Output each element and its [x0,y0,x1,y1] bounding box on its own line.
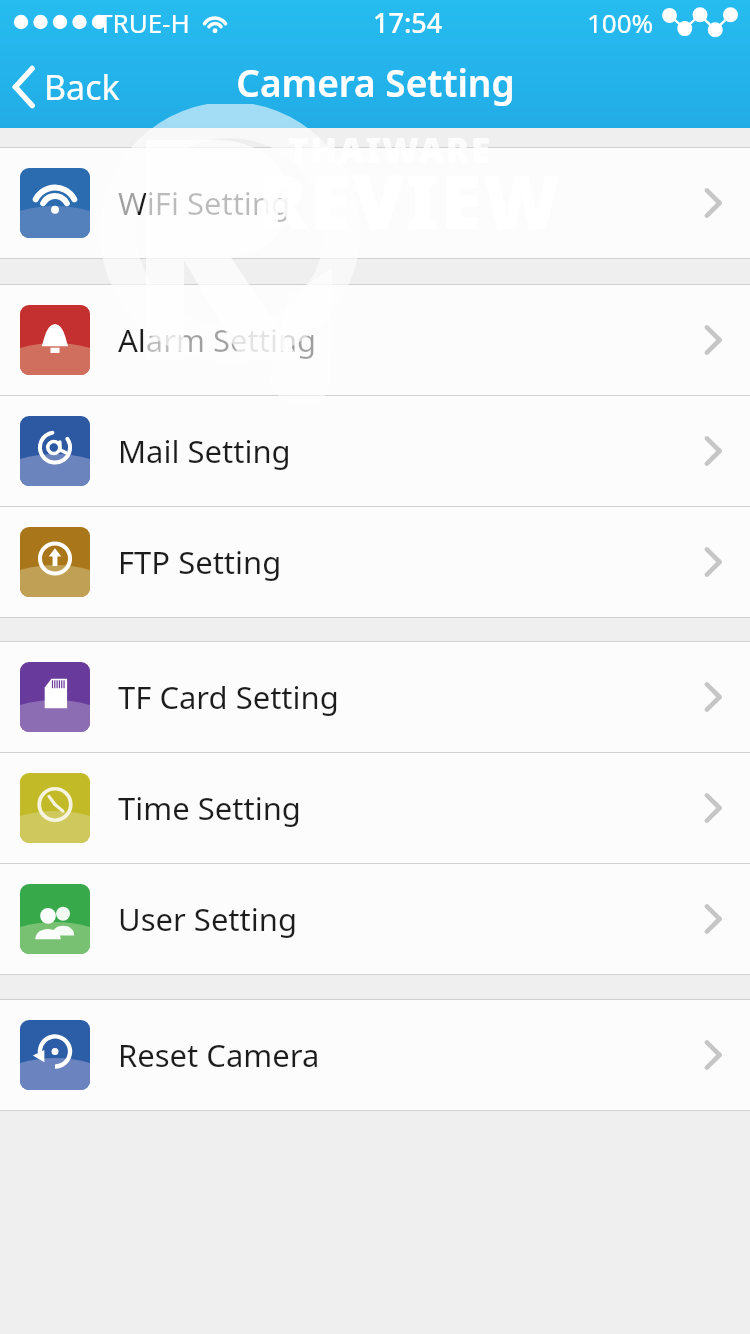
button[interactable]: Alarm Setting [0,285,750,395]
staticText: Mail Setting [118,430,702,472]
button[interactable]: Mail Setting [0,396,750,506]
staticText: 17:54 [373,4,443,41]
staticText: Reset Camera [118,1034,702,1076]
staticText: TRUE-H [98,5,190,40]
staticText: TF Card Setting [118,676,702,718]
staticText: WiFi Setting [118,182,702,224]
staticText: Time Setting [118,787,702,829]
staticText: FTP Setting [118,541,702,583]
button[interactable]: TF Card Setting [0,642,750,752]
button[interactable]: Reset Camera [0,1000,750,1110]
staticText: Camera Setting [236,57,515,107]
button[interactable]: User Setting [0,864,750,974]
staticText: 100% [587,5,654,40]
button[interactable]: Time Setting [0,753,750,863]
staticText: User Setting [118,898,702,940]
button[interactable]: WiFi Setting [0,148,750,258]
staticText: THAIWARE [288,126,492,174]
button[interactable]: FTP Setting [0,507,750,617]
button[interactable]: Back [0,46,138,128]
staticText: Back [44,64,120,110]
staticText: Alarm Setting [118,319,702,361]
